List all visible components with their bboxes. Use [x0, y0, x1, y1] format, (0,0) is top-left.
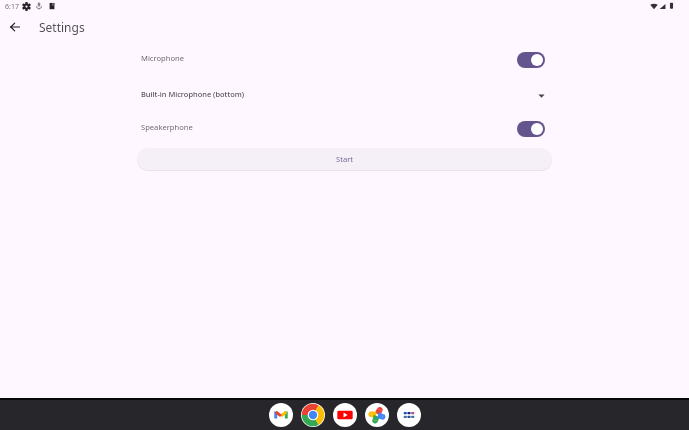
staticText: 6:17 [5, 2, 19, 12]
staticText: Speakerphone [141, 122, 193, 132]
staticText: Start [336, 154, 354, 164]
button[interactable]: Gmail [269, 403, 293, 427]
staticText: Built-in Microphone (bottom) [141, 89, 245, 99]
staticText: Microphone [141, 53, 185, 63]
button[interactable]: Microphone [141, 47, 545, 69]
button[interactable]: Photos [365, 403, 389, 427]
button[interactable]: Start [137, 148, 552, 170]
button[interactable]: YouTube [333, 403, 357, 427]
button[interactable]: Built-in Microphone (bottom) [141, 82, 552, 105]
button[interactable]: All apps [397, 403, 421, 427]
button[interactable]: Back [3, 15, 27, 39]
button[interactable]: Speakerphone [141, 116, 545, 138]
button[interactable]: Chrome [301, 403, 325, 427]
staticText: Settings [39, 19, 85, 35]
